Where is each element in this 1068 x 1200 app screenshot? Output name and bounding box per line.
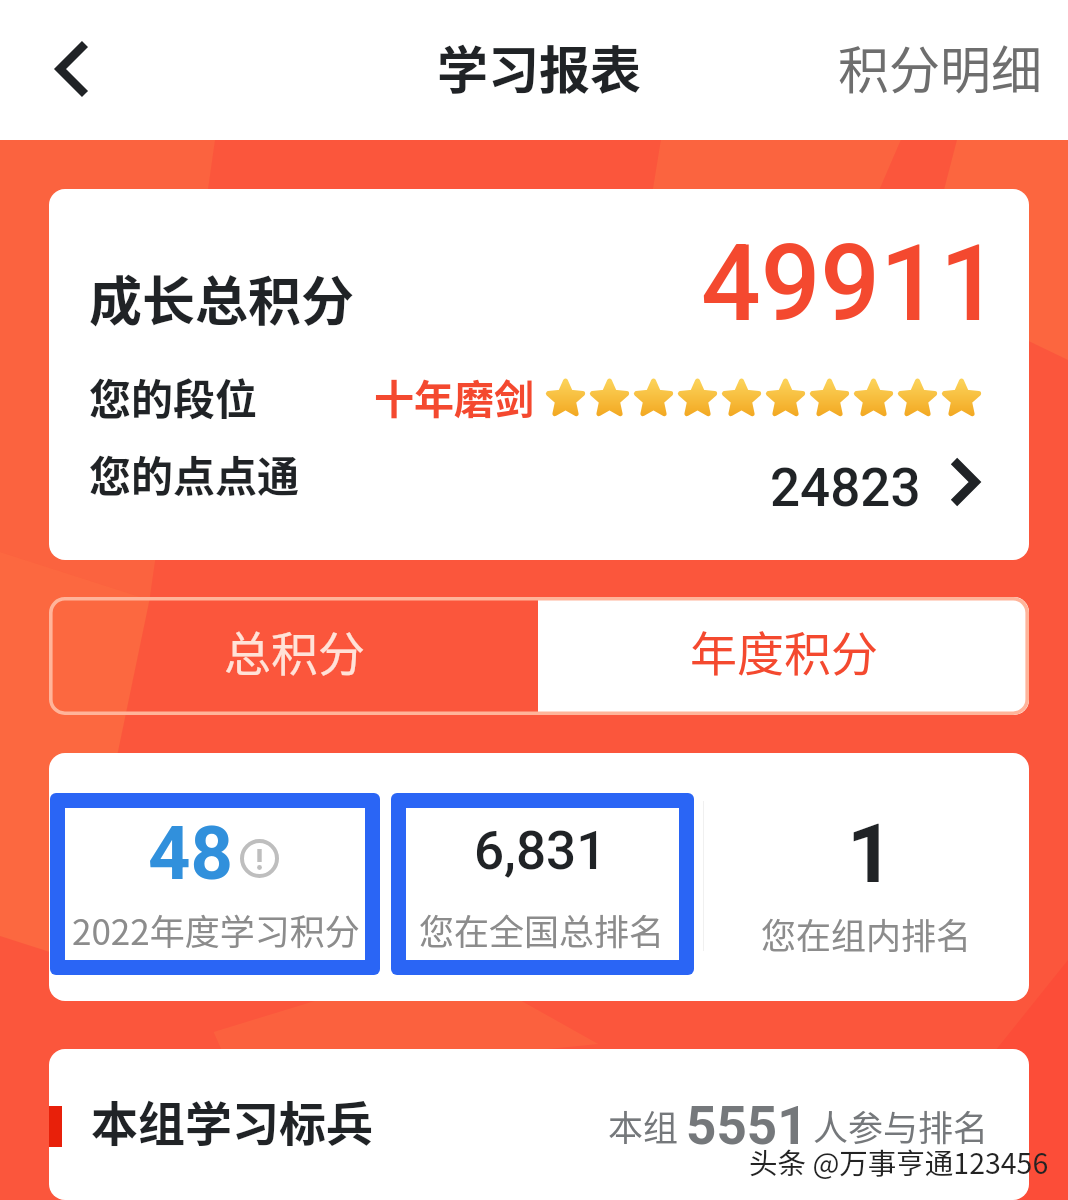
staticText: 48 [148, 810, 233, 897]
staticText: 头条 @万事亨通123456 [749, 1141, 1049, 1182]
staticText: 人参与排名 [813, 1100, 989, 1151]
staticText: 学习报表 [437, 30, 642, 104]
staticText: 积分明细 [838, 30, 1043, 104]
button[interactable]: 48 [65, 808, 365, 960]
button[interactable]: 1 [704, 793, 1029, 975]
staticText: 您在组内排名 [761, 908, 972, 959]
button[interactable]: 年度积分 [539, 597, 1029, 715]
staticText: 49911 [701, 223, 1000, 346]
staticText: 6,831 [474, 820, 607, 882]
staticText: 您的段位 [89, 366, 258, 427]
staticText: 您在全国总排名 [419, 904, 665, 955]
staticText: 5551 [686, 1095, 808, 1157]
staticText: 本组 [608, 1100, 679, 1151]
staticText: 24823 [770, 457, 921, 519]
button[interactable]: 24823 [759, 448, 1029, 516]
staticText: 本组学习标兵 [91, 1086, 373, 1154]
staticText: 您的点点通 [89, 443, 300, 504]
button[interactable]: 6,831 [406, 808, 679, 960]
staticText: 十年磨剑 [374, 368, 534, 426]
staticText: 年度积分 [690, 616, 878, 684]
button[interactable]: 总积分 [49, 597, 539, 715]
staticText: 总积分 [224, 616, 365, 684]
button[interactable]: 积分明细 [838, 30, 1043, 104]
staticText: 成长总积分 [89, 260, 354, 337]
staticText: 2022年度学习积分 [72, 904, 360, 955]
staticText: 1 [847, 807, 894, 902]
button[interactable]: Back [30, 26, 108, 114]
